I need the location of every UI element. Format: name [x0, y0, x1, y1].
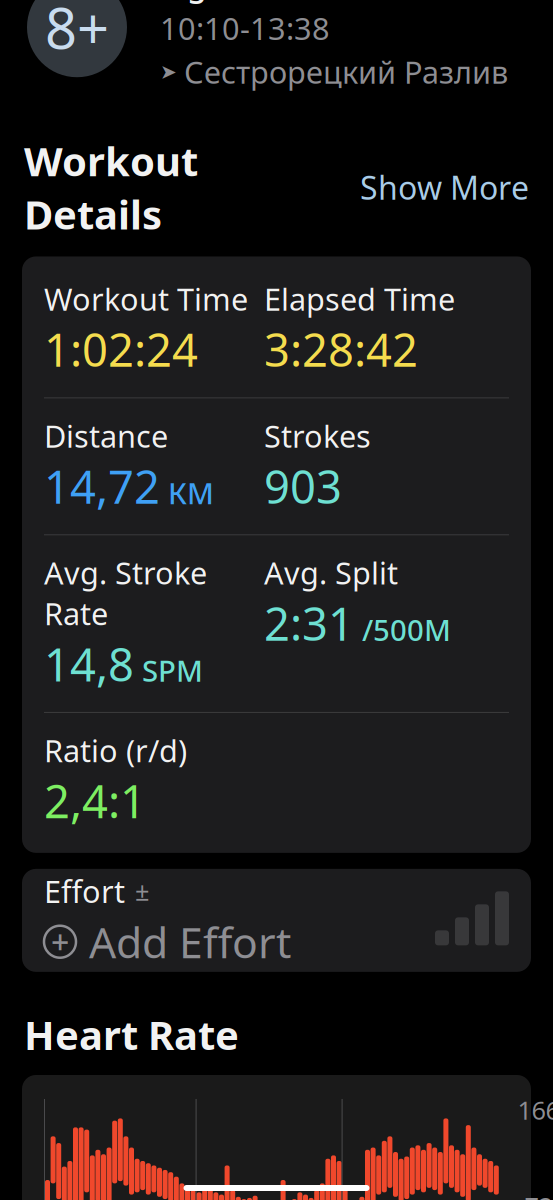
staticText: 3:28:42	[264, 319, 418, 379]
button[interactable]: Effort	[22, 869, 531, 972]
staticText: SPM	[142, 651, 203, 690]
staticText: Eight	[160, 0, 239, 5]
staticText: Effort	[44, 871, 125, 911]
staticText: 1:02:24	[44, 319, 198, 379]
staticText: +	[51, 920, 69, 963]
staticText: 8+	[45, 0, 109, 64]
button[interactable]: Show More	[348, 160, 529, 215]
staticText: Ratio (r/d)	[44, 730, 187, 771]
staticText: Strokes	[264, 415, 371, 456]
staticText: Show More	[360, 166, 529, 209]
staticText: 14,72	[44, 456, 160, 516]
staticText: /500M	[362, 610, 451, 649]
staticText: 10:10-13:38	[160, 8, 330, 48]
staticText: 72	[524, 1189, 552, 1200]
staticText: Сестрорецкий Разлив	[184, 51, 508, 92]
staticText: Heart Rate	[24, 1008, 239, 1061]
staticText: Avg. Stroke Rate	[44, 552, 207, 634]
staticText: 166	[517, 1093, 553, 1127]
staticText: Workout Details	[24, 134, 198, 240]
staticText: Elapsed Time	[264, 278, 455, 319]
staticText: Avg. Split	[264, 552, 398, 593]
staticText: 903	[264, 456, 342, 516]
staticText: ±	[135, 874, 149, 908]
staticText: 14,8	[44, 634, 134, 694]
staticText: КМ	[168, 473, 214, 512]
staticText: 2:31	[264, 593, 354, 653]
staticText: ➤	[160, 60, 177, 83]
staticText: Distance	[44, 415, 168, 456]
staticText: Add Effort	[89, 913, 291, 970]
staticText: Workout Time	[44, 278, 248, 319]
staticText: 2,4:1	[44, 771, 146, 831]
